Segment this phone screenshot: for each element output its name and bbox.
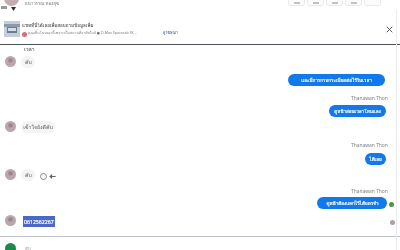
button[interactable]: ดูหน้าต้องแลกไว้ได้แดรจำ bbox=[317, 197, 387, 209]
button[interactable]: 0612562267 bbox=[23, 216, 55, 227]
button[interactable]: Profile photo bbox=[5, 169, 16, 180]
staticText: คับ bbox=[25, 58, 32, 66]
staticText: Thanawan Thon bbox=[351, 188, 388, 195]
staticText: คับ bbox=[25, 245, 31, 250]
button[interactable]: Reply bbox=[49, 173, 56, 180]
button[interactable]: Toolbar button bbox=[288, 0, 305, 6]
button[interactable]: และมีการกรอกระเบียดต่อไว้ในเวลา bbox=[288, 74, 385, 86]
button[interactable]: Toolbar button bbox=[364, 0, 381, 6]
button[interactable]: คับ bbox=[21, 169, 35, 181]
button[interactable]: Toolbar button bbox=[307, 0, 324, 6]
button[interactable]: Profile photo bbox=[5, 56, 16, 67]
button[interactable]: React bbox=[40, 173, 47, 180]
button[interactable]: Profile photo bbox=[5, 121, 16, 132]
staticText: เวลา bbox=[24, 45, 35, 53]
staticText: ดูหน้าต้องแลกไว้ได้แดรจำ bbox=[326, 200, 379, 207]
staticText: แชทที่นี่ได้เลยเพื่อสอบถามข้อมูลเพิ่ม bbox=[22, 22, 94, 29]
staticText: 0612562267 bbox=[24, 218, 54, 225]
button[interactable]: Toolbar button bbox=[345, 0, 362, 6]
staticText: ได้เลย bbox=[369, 156, 382, 163]
staticText: และมีการกรอกระเบียดต่อไว้ในเวลา bbox=[301, 77, 372, 84]
staticText: Thanawan Thon bbox=[351, 142, 388, 149]
staticText: คุณเห็นโฆษณานี้เพราะเป็นสถานที่อาศัยใกล้… bbox=[28, 30, 137, 36]
button[interactable]: Toolbar button bbox=[326, 0, 343, 6]
button[interactable]: เข้าใจยังดีคับ bbox=[21, 121, 55, 133]
staticText: เข้าใจยังดีคับ bbox=[23, 123, 53, 131]
staticText: ธนาวรรณ ทองสุข bbox=[25, 0, 59, 7]
staticText: คับ bbox=[25, 171, 32, 179]
staticText: ดูหน้าสอนเวลาโทนแลง bbox=[334, 108, 381, 115]
button[interactable]: คับ bbox=[21, 56, 35, 68]
staticText: Thanawan Thon bbox=[351, 95, 388, 102]
button[interactable]: Profile photo bbox=[5, 215, 16, 226]
button[interactable]: ดูหน้าสอนเวลาโทนแลง bbox=[329, 105, 386, 117]
button[interactable]: Close bbox=[383, 23, 396, 36]
button[interactable]: ได้เลย bbox=[365, 153, 386, 165]
staticText: ดูโฆษณา bbox=[163, 30, 179, 36]
